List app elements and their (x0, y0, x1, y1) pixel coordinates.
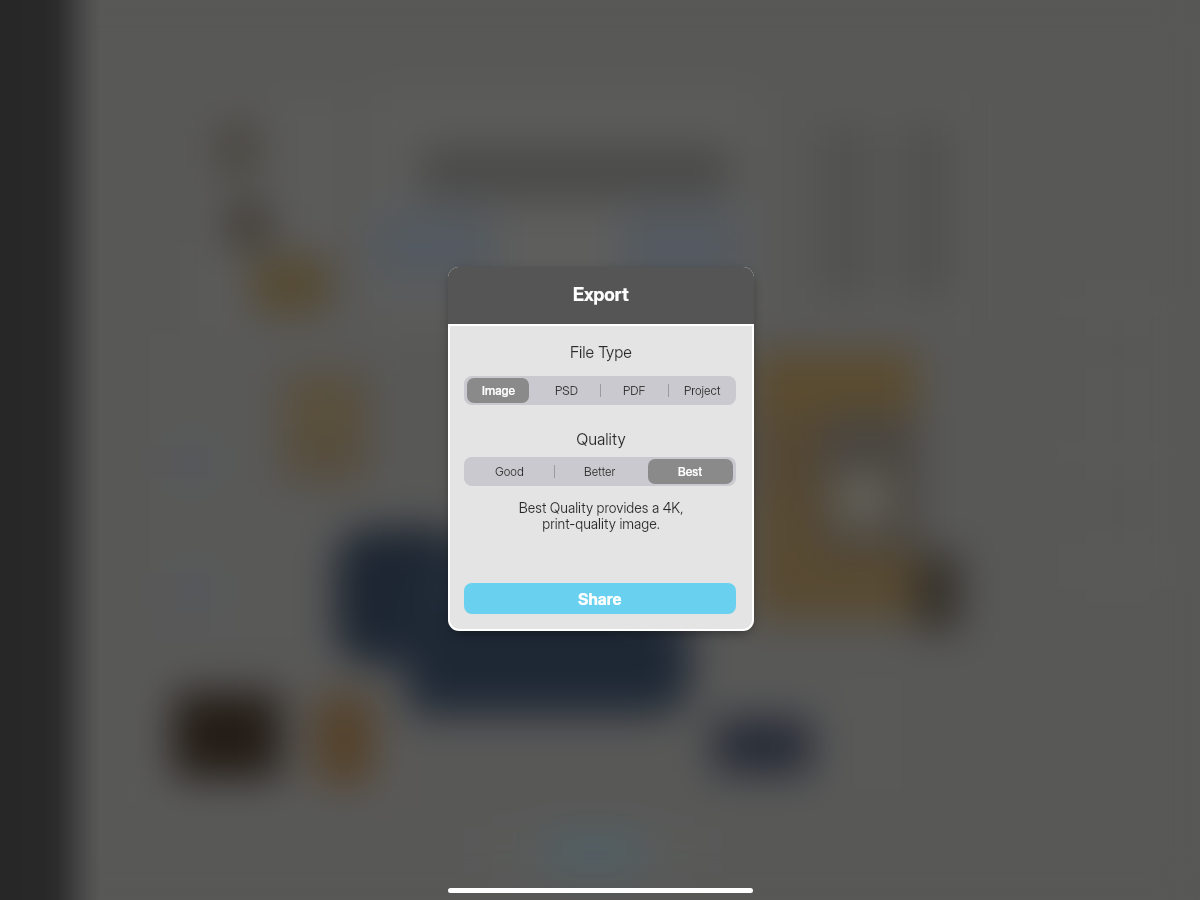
button[interactable]: Share (464, 583, 736, 614)
staticText: Share (578, 589, 622, 608)
button[interactable]: PDF (600, 376, 668, 405)
staticText: Best Quality provides a 4K, print-qualit… (450, 499, 752, 532)
staticText: Quality (450, 429, 752, 448)
staticText: PDF (623, 383, 646, 398)
staticText: Project (684, 383, 721, 398)
staticText: Good (495, 464, 524, 479)
staticText: File Type (450, 342, 752, 361)
staticText: Export (573, 284, 629, 306)
staticText: Best (678, 464, 703, 479)
staticText: Image (482, 383, 515, 398)
button[interactable]: Good (464, 457, 554, 486)
button[interactable]: Better (554, 457, 645, 486)
staticText: PSD (555, 383, 578, 398)
button[interactable]: Best (645, 457, 736, 486)
button[interactable]: Image (464, 376, 532, 405)
button[interactable]: PSD (532, 376, 600, 405)
other: Home indicator (448, 888, 753, 893)
staticText: Better (584, 464, 616, 479)
button[interactable]: Project (668, 376, 736, 405)
